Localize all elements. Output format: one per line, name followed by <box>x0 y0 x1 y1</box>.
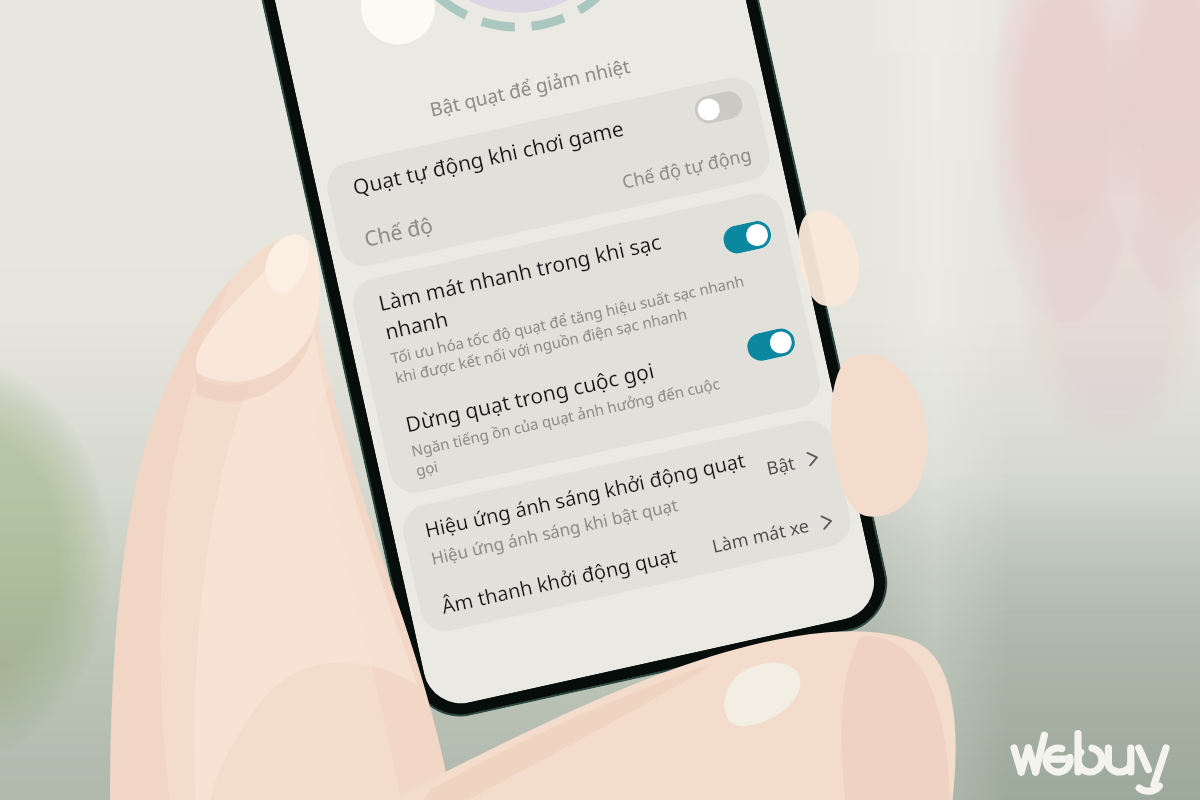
staticText: Bật quạt để giảm nhiệt <box>302 25 757 150</box>
button[interactable]: Âm thanh khởi động quạt <box>415 491 856 636</box>
button[interactable]: Hiệu ứng ánh sáng khởi động quạt <box>398 415 845 586</box>
staticText: Chế độ <box>362 210 436 254</box>
staticText: Chế độ tự động <box>620 142 754 195</box>
button[interactable]: Toggle off <box>692 88 745 126</box>
staticText: Bật <box>764 450 798 481</box>
staticText: Âm thanh khởi động quạt <box>439 541 680 620</box>
staticText: Làm mát nhanh trong khi sạc nhanh <box>376 217 718 346</box>
staticText: Quạt tự động khi chơi game <box>350 100 686 202</box>
button[interactable]: Toggle on <box>721 218 774 256</box>
button[interactable]: Quạt tự động khi chơi game <box>322 72 763 219</box>
staticText: Làm mát xe <box>710 513 812 559</box>
button[interactable]: Chế độ <box>334 124 775 271</box>
button[interactable]: Toggle on <box>745 326 797 363</box>
button[interactable]: Dừng quạt trong cuộc gọi <box>375 310 825 498</box>
staticText: Tối ưu hóa tốc độ quạt để tăng hiệu suất… <box>389 270 751 387</box>
staticText: Dừng quạt trong cuộc gọi <box>403 338 739 439</box>
button[interactable]: Làm mát nhanh trong khi sạc nhanh <box>348 189 804 405</box>
staticText: Ngăn tiếng ồn của quạt ảnh hưởng đến cuộ… <box>409 373 727 480</box>
staticText: Hiệu ứng ánh sáng khởi động quạt <box>422 446 748 544</box>
staticText: Hiệu ứng ánh sáng khi bật quạt <box>429 493 680 570</box>
